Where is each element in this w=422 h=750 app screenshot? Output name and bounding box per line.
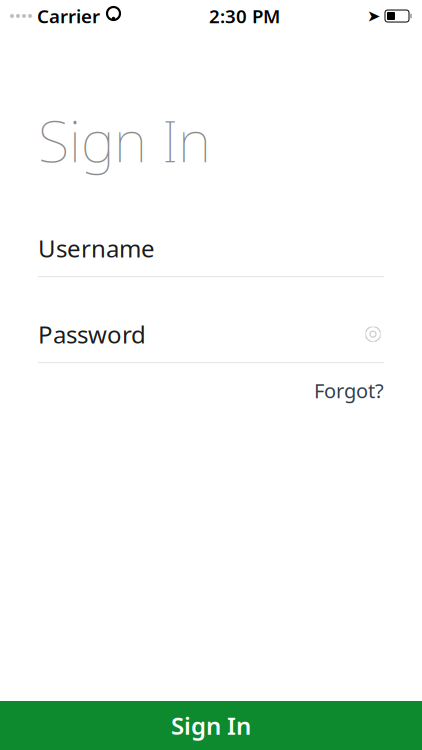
staticText: ➤ — [367, 7, 380, 25]
staticText: Password — [38, 318, 146, 350]
button[interactable]: Sign In — [0, 701, 422, 750]
staticText: Sign In — [38, 102, 211, 178]
staticText: 2:30 PM — [209, 4, 280, 28]
staticText: Username — [38, 232, 155, 264]
staticText: Carrier — [37, 4, 100, 28]
button[interactable]: Password — [0, 319, 422, 363]
staticText: Forgot? — [314, 377, 384, 404]
button[interactable]: Forgot? — [314, 377, 384, 404]
button[interactable]: Show password — [362, 326, 384, 342]
button[interactable]: Username — [0, 233, 422, 277]
staticText: Sign In — [171, 710, 251, 741]
